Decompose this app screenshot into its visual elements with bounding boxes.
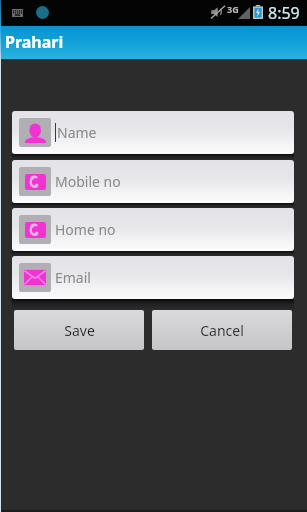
staticText: Cancel [200,321,244,340]
button[interactable]: Email [12,256,294,299]
staticText: 8:59 [268,2,300,24]
staticText: 3G [227,3,239,15]
button[interactable]: Name [12,111,294,154]
button[interactable]: Home no [12,208,294,251]
staticText: Mobile no [55,172,121,191]
staticText: Email [55,268,91,287]
staticText: Prahari [5,31,64,53]
button[interactable]: Cancel [152,310,292,350]
button[interactable]: Mobile no [12,160,294,203]
button[interactable]: Save [14,310,144,350]
staticText: Save [64,321,95,340]
staticText: Home no [55,220,116,239]
staticText: Name [57,123,97,142]
